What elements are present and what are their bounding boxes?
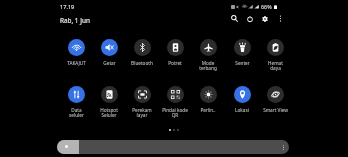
button[interactable]: Potret [158, 39, 192, 66]
staticText: Hemat daya [268, 60, 283, 72]
staticText: 17.19 [60, 3, 75, 11]
button[interactable]: Perlin.. [191, 86, 225, 113]
staticText: Pindai kode QR [162, 107, 188, 119]
button[interactable]: Senter [225, 39, 259, 66]
staticText: Lokasi [235, 107, 249, 113]
staticText: Rab, 1 Jun [60, 16, 90, 25]
staticText: Senter [235, 60, 250, 66]
button[interactable]: Smart View [258, 86, 292, 113]
button[interactable]: Brightness [57, 140, 289, 154]
button[interactable]: Search [228, 12, 241, 25]
staticText: Bluetooth [131, 60, 153, 66]
staticText: Mode terbang [199, 60, 217, 72]
staticText: Smart View [263, 107, 288, 113]
staticText: Data seluler [69, 107, 84, 119]
staticText: 66% [261, 3, 272, 10]
button[interactable]: Bluetooth [125, 39, 159, 66]
button[interactable]: Mode terbang [191, 39, 225, 72]
button[interactable]: Power [243, 12, 256, 25]
button[interactable]: Hemat daya [258, 39, 292, 72]
staticText: Perekam layar [132, 107, 152, 119]
staticText: TAKAJUT [67, 60, 86, 66]
staticText: Getar [103, 60, 116, 66]
staticText: Perlin.. [200, 107, 216, 113]
button[interactable]: Lokasi [225, 86, 259, 113]
button[interactable]: TAKAJUT [59, 39, 93, 66]
button[interactable]: Getar [92, 39, 126, 66]
button[interactable]: Perekam layar [125, 86, 159, 119]
button[interactable]: More options [274, 12, 287, 25]
button[interactable]: Hotspot Seluler [92, 86, 126, 119]
button[interactable]: Settings [258, 12, 271, 25]
staticText: Potret [168, 60, 182, 66]
button[interactable]: Data seluler [59, 86, 93, 119]
button[interactable]: Pindai kode QR [158, 86, 192, 119]
staticText: Hotspot Seluler [100, 107, 118, 119]
